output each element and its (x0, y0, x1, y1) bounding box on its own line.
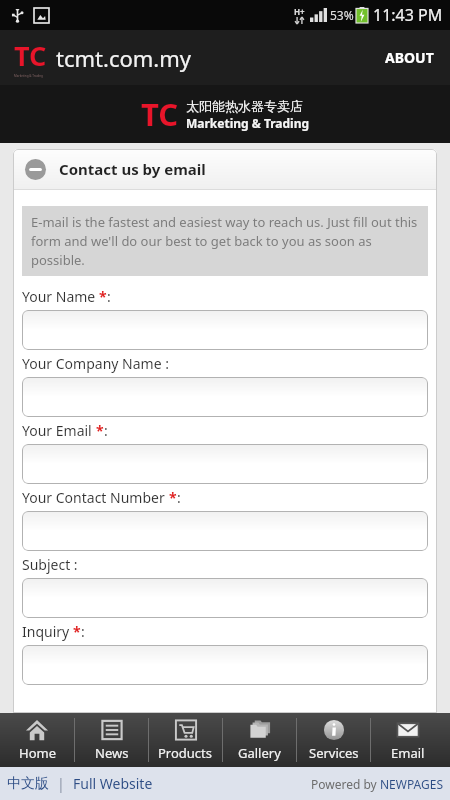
staticText: Gallery (238, 744, 281, 762)
staticText: Powered by (311, 776, 380, 792)
staticText: Marketing & Trading (14, 74, 43, 78)
button[interactable]: Products (149, 713, 222, 767)
staticText: NEWPAGES (380, 776, 444, 792)
button[interactable]: Full Website (71, 770, 155, 797)
button[interactable] (22, 578, 428, 618)
staticText: 太阳能热水器专卖店 (186, 98, 303, 114)
button[interactable] (22, 444, 428, 484)
button[interactable]: Gallery (223, 713, 296, 767)
staticText: Subject : (22, 555, 78, 574)
staticText: Full Website (73, 774, 153, 793)
staticText: Your Company Name : (22, 354, 169, 373)
staticText: : (177, 488, 181, 507)
staticText: * (96, 421, 104, 440)
button[interactable] (22, 511, 428, 551)
staticText: : (104, 421, 108, 440)
staticText: Products (158, 744, 213, 762)
button[interactable]: Email (371, 713, 444, 767)
button[interactable]: Contact us by email (13, 149, 437, 189)
button[interactable]: Services (297, 713, 370, 767)
staticText: * (169, 488, 177, 507)
staticText: : (81, 622, 85, 641)
button[interactable] (22, 645, 428, 685)
button[interactable]: Home (0, 713, 74, 767)
staticText: 11:43 PM (373, 4, 443, 26)
staticText: Home (19, 744, 56, 762)
staticText: tcmt.com.my (56, 43, 192, 73)
staticText: TC (14, 37, 47, 74)
button[interactable] (22, 310, 428, 350)
staticText: ABOUT (385, 48, 434, 67)
staticText: News (95, 744, 129, 762)
staticText: Email (391, 744, 425, 762)
button[interactable]: 中文版 (5, 771, 51, 797)
button[interactable]: News (75, 713, 148, 767)
staticText: 53% (330, 7, 354, 23)
staticText: Inquiry (22, 622, 73, 641)
staticText: E-mail is the fastest and easiest way to… (31, 213, 419, 269)
staticText: Your Contact Number (22, 488, 169, 507)
staticText: Your Name (22, 287, 99, 306)
button[interactable] (22, 377, 428, 417)
staticText: 中文版 (7, 775, 49, 793)
staticText: H+ (294, 6, 305, 17)
staticText: Marketing & Trading (186, 115, 310, 131)
staticText: Your Email (22, 421, 96, 440)
staticText: | (57, 774, 65, 793)
staticText: TC (141, 93, 179, 135)
staticText: Contact us by email (59, 159, 206, 179)
staticText: : (107, 287, 111, 306)
staticText: * (73, 622, 81, 641)
button[interactable]: ABOUT (369, 36, 450, 79)
staticText: Services (309, 744, 359, 762)
staticText: * (99, 287, 107, 306)
